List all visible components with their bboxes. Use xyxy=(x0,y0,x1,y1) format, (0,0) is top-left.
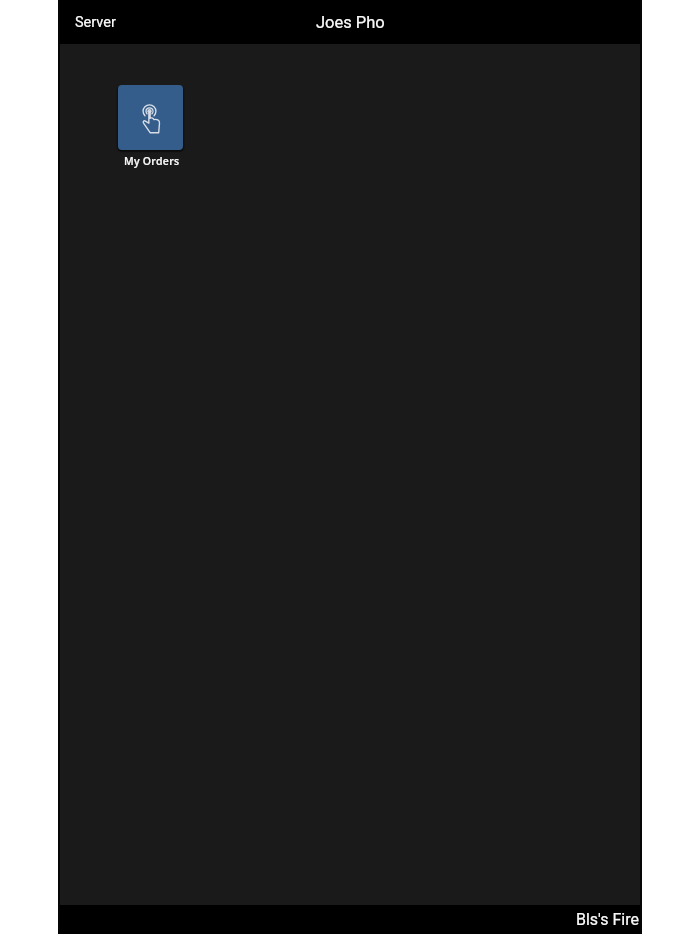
button[interactable]: Tap xyxy=(118,85,183,168)
other: Tap xyxy=(141,101,162,135)
staticText: Joes Pho xyxy=(316,13,385,32)
staticText: Bls's Fire xyxy=(576,910,640,929)
staticText: Server xyxy=(75,14,116,31)
button[interactable]: Server xyxy=(58,0,133,44)
staticText: My Orders xyxy=(124,154,180,168)
button[interactable]: Bls's Fire xyxy=(566,905,642,934)
